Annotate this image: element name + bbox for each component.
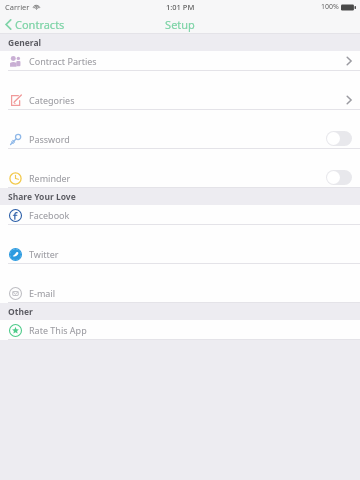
button[interactable]: Contract Parties bbox=[0, 51, 360, 70]
staticText: 1:01 PM bbox=[166, 2, 195, 12]
staticText: 100% bbox=[321, 2, 339, 12]
other: Toggle Password bbox=[326, 131, 352, 146]
other: Toggle Reminder bbox=[326, 170, 352, 185]
button[interactable]: Contracts bbox=[0, 15, 71, 34]
button[interactable]: Password bbox=[0, 129, 360, 148]
button[interactable]: E-mail bbox=[0, 283, 360, 302]
staticText: Share Your Love bbox=[8, 191, 76, 203]
staticText: Other bbox=[8, 306, 33, 318]
staticText: Password bbox=[29, 133, 70, 145]
staticText: E-mail bbox=[29, 287, 56, 299]
staticText: Carrier bbox=[5, 2, 30, 12]
staticText: Setup bbox=[165, 17, 195, 32]
staticText: Reminder bbox=[29, 172, 71, 184]
button[interactable]: Facebook bbox=[0, 205, 360, 224]
button[interactable]: Rate This App bbox=[0, 320, 360, 339]
staticText: Facebook bbox=[29, 209, 70, 221]
button[interactable]: Twitter bbox=[0, 244, 360, 263]
staticText: Contracts bbox=[15, 17, 65, 32]
staticText: Contract Parties bbox=[29, 55, 97, 67]
button[interactable]: Reminder bbox=[0, 168, 360, 187]
button[interactable]: Categories bbox=[0, 90, 360, 109]
staticText: General bbox=[8, 37, 42, 49]
staticText: Twitter bbox=[29, 248, 59, 260]
staticText: Rate This App bbox=[29, 324, 87, 336]
staticText: Categories bbox=[29, 94, 75, 106]
